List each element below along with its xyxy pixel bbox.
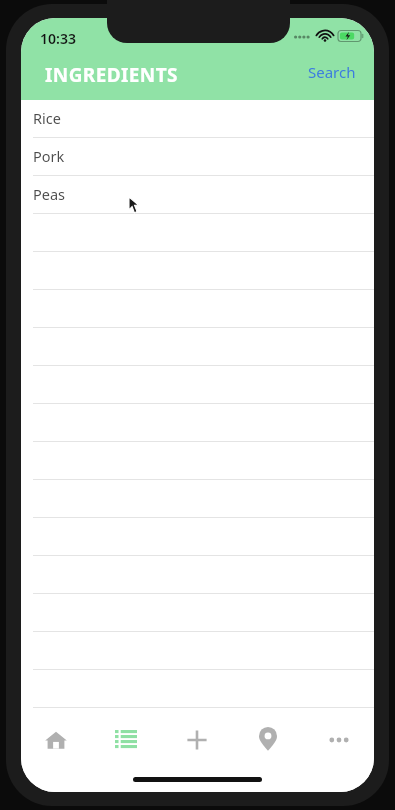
button[interactable]	[21, 366, 374, 404]
staticText: Pork	[33, 146, 65, 166]
button[interactable]	[21, 518, 374, 556]
button[interactable]	[21, 328, 374, 366]
button[interactable]	[21, 670, 374, 708]
button[interactable]	[21, 556, 374, 594]
staticText: INGREDIENTS	[45, 62, 178, 88]
button[interactable]: Pork	[21, 138, 374, 176]
button[interactable]: Peas	[21, 176, 374, 214]
button[interactable]	[21, 594, 374, 632]
staticText: Search	[308, 62, 356, 82]
button[interactable]	[21, 404, 374, 442]
button[interactable]: Places	[232, 716, 303, 764]
staticText: Rice	[33, 108, 61, 128]
button[interactable]: Add	[161, 716, 232, 764]
button[interactable]	[21, 252, 374, 290]
button[interactable]	[21, 480, 374, 518]
button[interactable]: Home	[21, 716, 91, 764]
button[interactable]	[21, 632, 374, 670]
button[interactable]: Search	[304, 60, 360, 84]
staticText: 10:33	[40, 29, 76, 48]
button[interactable]	[21, 442, 374, 480]
button[interactable]: List	[91, 716, 161, 764]
staticText: Peas	[33, 184, 66, 204]
button[interactable]: Rice	[21, 100, 374, 138]
button[interactable]	[21, 214, 374, 252]
button[interactable]: More	[303, 716, 374, 764]
button[interactable]	[21, 290, 374, 328]
